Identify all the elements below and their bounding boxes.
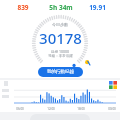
staticText: 5h 34m [49, 3, 73, 12]
button[interactable]: 19.91 [79, 2, 116, 13]
staticText: 今日步數 [52, 22, 68, 27]
staticText: 12:00 [47, 107, 55, 111]
staticText: 目標 10000 [51, 49, 69, 54]
button[interactable]: 839 [4, 2, 42, 13]
button[interactable]: 5h 34m [42, 2, 79, 13]
staticText: 18:00 [77, 107, 85, 111]
other: Activity badge [84, 59, 91, 66]
staticText: 等級：非常活躍 [48, 54, 73, 58]
button[interactable]: 我的行動紀錄 [38, 67, 83, 77]
staticText: 30178 [39, 28, 82, 48]
staticText: 839 [17, 3, 29, 12]
staticText: 19.91 [89, 3, 106, 12]
staticText: 06:00 [16, 107, 24, 111]
button[interactable]: Apps [0, 80, 120, 112]
staticText: 00:00 [108, 107, 116, 111]
other: Apps [109, 81, 117, 89]
staticText: 我的行動紀錄 [47, 69, 74, 75]
